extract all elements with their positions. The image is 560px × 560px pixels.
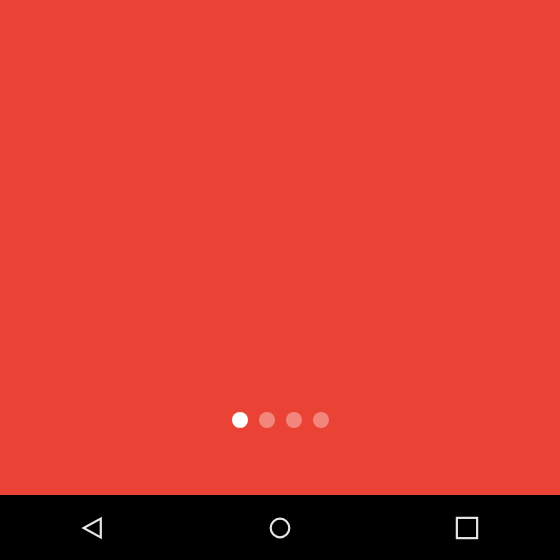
button[interactable]: Home: [186, 495, 374, 560]
button[interactable]: Back: [0, 495, 186, 560]
button[interactable]: Page 1: [232, 412, 248, 428]
button[interactable]: Page 4: [313, 412, 329, 428]
button[interactable]: Recent apps: [374, 495, 560, 560]
button[interactable]: Page 2: [259, 412, 275, 428]
button[interactable]: Page 3: [286, 412, 302, 428]
